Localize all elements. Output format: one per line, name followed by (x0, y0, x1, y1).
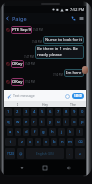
button[interactable]: j (58, 128, 65, 136)
button[interactable]: Paige (11, 15, 28, 22)
button[interactable]: Home (39, 162, 51, 174)
button[interactable]: 9 (71, 108, 77, 116)
button[interactable]: 6 (47, 108, 53, 116)
button[interactable]: f (31, 128, 38, 136)
button[interactable]: OKay (12, 61, 23, 67)
button[interactable]: SEND (72, 93, 84, 99)
button[interactable]: e (23, 118, 29, 126)
button[interactable]: Recents (16, 162, 28, 174)
staticText: m (68, 139, 72, 145)
staticText: Be there in 1 min. Be ready please (37, 46, 82, 58)
button[interactable]: h (49, 128, 56, 136)
button[interactable]: b (51, 138, 57, 146)
button[interactable]: 8 (63, 108, 69, 116)
button[interactable]: ☺ (17, 148, 24, 159)
staticText: b (53, 139, 56, 145)
button[interactable]: o (71, 118, 77, 126)
staticText: 6 (49, 109, 52, 115)
staticText: s (17, 129, 20, 135)
button[interactable]: The (59, 101, 86, 107)
button[interactable]: Back (63, 162, 75, 174)
staticText: English (US) (36, 152, 54, 156)
button[interactable]: p (79, 118, 85, 126)
button[interactable]: c (35, 138, 41, 146)
button[interactable]: s (15, 128, 21, 136)
staticText: ☺ (19, 152, 23, 156)
button[interactable]: Emoji (63, 92, 71, 100)
button[interactable]: y (47, 118, 53, 126)
button[interactable]: Attach (5, 92, 13, 100)
staticText: 1 (7, 109, 10, 115)
button[interactable]: q (5, 118, 12, 126)
staticText: 9 (73, 109, 76, 115)
button[interactable]: Im here (66, 70, 82, 76)
button[interactable]: d (23, 128, 29, 136)
button[interactable]: 0 (79, 108, 85, 116)
button[interactable]: Text message (13, 90, 63, 101)
button[interactable]: Be there in 1 min. Be ready please (37, 46, 82, 58)
staticText: 4 (33, 109, 36, 115)
button[interactable]: 1 (5, 108, 12, 116)
button[interactable]: x (27, 138, 33, 146)
button[interactable]: More options (78, 13, 85, 24)
button[interactable]: z (18, 138, 25, 146)
button[interactable]: m (67, 138, 73, 146)
staticText: ⇧ (9, 140, 12, 144)
staticText: OKay (12, 61, 23, 67)
button[interactable]: Nurse to look for it (45, 37, 82, 43)
staticText: t (41, 119, 43, 125)
staticText: ?123 (7, 152, 14, 156)
button[interactable]: Back (4, 13, 11, 24)
staticText: l (79, 129, 81, 135)
button[interactable]: ⇧ (5, 138, 16, 146)
button[interactable]: 7 (55, 108, 61, 116)
button[interactable]: . (66, 148, 73, 159)
button[interactable]: OKay (12, 79, 23, 85)
staticText: q (7, 119, 10, 125)
staticText: ⌫ (78, 140, 83, 144)
staticText: Paige (12, 15, 27, 22)
staticText: c (37, 139, 40, 145)
staticText: r (33, 119, 35, 125)
button[interactable]: 5 (39, 108, 45, 116)
staticText: 7 (57, 109, 60, 115)
staticText: 7:45 PM (33, 28, 43, 32)
button[interactable]: r (31, 118, 37, 126)
button[interactable]: I (4, 101, 32, 107)
staticText: ↵ (79, 152, 82, 156)
button[interactable]: ?123 (5, 148, 15, 159)
button[interactable]: English (US) (26, 148, 64, 159)
button[interactable]: v (43, 138, 49, 146)
button[interactable]: l (76, 128, 83, 136)
button[interactable]: t (39, 118, 45, 126)
staticText: h (51, 129, 54, 135)
button[interactable]: 2 (14, 108, 21, 116)
staticText: 7:52 PM (25, 80, 35, 84)
button[interactable]: u (55, 118, 61, 126)
button[interactable]: n (59, 138, 65, 146)
staticText: 7:46 PM (32, 40, 42, 44)
button[interactable]: ↵ (75, 148, 85, 159)
staticText: i (65, 119, 67, 125)
staticText: 7:49 PM (25, 62, 35, 66)
staticText: u (57, 119, 60, 125)
staticText: v (45, 139, 48, 145)
button[interactable]: a (7, 128, 13, 136)
staticText: p (81, 119, 84, 125)
button[interactable]: w (14, 118, 21, 126)
staticText: Hey (42, 102, 49, 107)
staticText: PTE Sep 9 (12, 27, 31, 33)
staticText: n (61, 139, 64, 145)
button[interactable]: i (63, 118, 69, 126)
button[interactable]: Call (68, 13, 78, 24)
staticText: x (29, 139, 32, 145)
button[interactable]: ⌫ (75, 138, 85, 146)
button[interactable]: g (40, 128, 47, 136)
button[interactable]: k (67, 128, 74, 136)
button[interactable]: Hey (32, 101, 59, 107)
button[interactable]: 3 (23, 108, 29, 116)
staticText: Text message (13, 93, 35, 98)
staticText: 5 (41, 109, 44, 115)
button[interactable]: 4 (31, 108, 37, 116)
button[interactable]: PTE Sep 9 (12, 27, 31, 33)
